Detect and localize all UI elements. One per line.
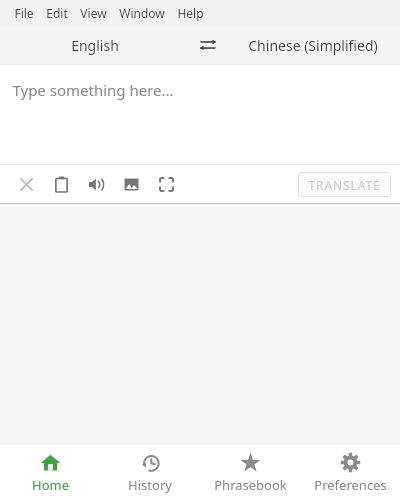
button[interactable]: English xyxy=(0,26,190,64)
button[interactable]: Paste from clipboard xyxy=(48,171,74,197)
button[interactable]: View xyxy=(74,2,113,24)
button[interactable]: Preferences xyxy=(300,445,400,500)
button[interactable]: Clear xyxy=(13,171,39,197)
button[interactable]: TRANSLATE xyxy=(298,172,391,197)
button[interactable]: Window xyxy=(113,2,171,24)
staticText: Home xyxy=(32,476,69,494)
button[interactable]: History xyxy=(100,445,200,500)
button[interactable]: Pick image xyxy=(118,171,144,197)
staticText: View xyxy=(80,5,107,21)
staticText: Preferences xyxy=(314,476,387,494)
button[interactable]: Speak xyxy=(83,171,109,197)
button[interactable]: Chinese (Simplified) xyxy=(226,26,400,64)
staticText: Chinese (Simplified) xyxy=(248,36,378,55)
staticText: Window xyxy=(119,5,165,21)
staticText: File xyxy=(14,5,34,21)
staticText: History xyxy=(128,476,172,494)
staticText: TRANSLATE xyxy=(308,177,381,193)
button[interactable]: Phrasebook xyxy=(200,445,300,500)
button[interactable]: Edit xyxy=(40,2,74,24)
button[interactable]: Fullscreen xyxy=(153,171,179,197)
staticText: English xyxy=(71,36,119,55)
staticText: Edit xyxy=(46,5,68,21)
staticText: Type something here... xyxy=(12,80,174,100)
button[interactable]: Swap languages xyxy=(190,26,226,64)
button[interactable]: File xyxy=(8,2,40,24)
button[interactable]: Help xyxy=(171,2,210,24)
staticText: Phrasebook xyxy=(214,476,287,494)
button[interactable]: Home xyxy=(0,445,100,500)
staticText: Help xyxy=(177,5,204,21)
button[interactable]: Type something here... xyxy=(0,65,400,164)
